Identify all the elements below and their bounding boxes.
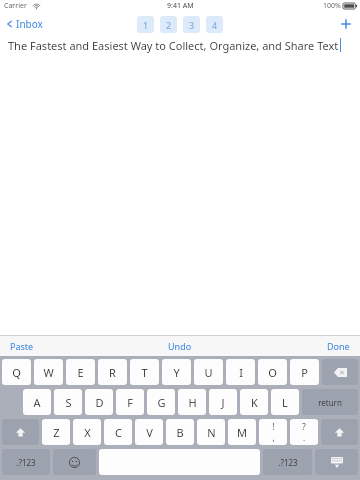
staticText: ? . — [302, 421, 306, 443]
button[interactable]: Paste — [0, 337, 44, 355]
button[interactable]: H — [178, 389, 206, 415]
staticText: S — [65, 395, 72, 410]
button[interactable]: T — [130, 359, 159, 385]
staticText: .?123 — [278, 457, 298, 468]
button[interactable]: K — [240, 389, 268, 415]
staticText: D — [95, 395, 104, 410]
staticText: J — [221, 395, 225, 410]
button[interactable]: 1 — [137, 16, 154, 33]
button[interactable]: Y — [162, 359, 191, 385]
button[interactable]: Z — [42, 419, 70, 445]
button[interactable]: 2 — [160, 16, 177, 33]
button[interactable]: Hide keyboard — [315, 449, 358, 475]
button[interactable]: ! , — [259, 419, 287, 445]
button[interactable]: F — [116, 389, 144, 415]
button[interactable]: Backspace — [322, 359, 358, 385]
button[interactable]: Inbox — [0, 13, 51, 35]
staticText: Q — [12, 365, 21, 380]
staticText: 100% — [323, 1, 341, 11]
staticText: H — [188, 395, 197, 410]
button[interactable]: J — [209, 389, 237, 415]
button[interactable]: X — [73, 419, 101, 445]
button[interactable]: Emoji — [53, 449, 96, 475]
staticText: F — [127, 395, 133, 410]
staticText: Y — [173, 365, 180, 380]
button[interactable]: Q — [2, 359, 31, 385]
button[interactable]: Done — [317, 337, 360, 355]
staticText: W — [43, 365, 54, 380]
button[interactable]: C — [104, 419, 132, 445]
button[interactable]: P — [290, 359, 319, 385]
staticText: Inbox — [16, 17, 43, 31]
staticText: L — [282, 395, 288, 410]
staticText: B — [176, 425, 184, 440]
staticText: 3 — [189, 19, 195, 31]
staticText: U — [204, 365, 213, 380]
button[interactable]: N — [197, 419, 225, 445]
staticText: R — [109, 365, 116, 380]
button[interactable]: ? . — [290, 419, 318, 445]
staticText: Z — [53, 425, 60, 440]
staticText: I — [239, 365, 243, 380]
staticText: K — [251, 395, 258, 410]
staticText: 9:41 AM — [167, 1, 194, 11]
staticText: G — [157, 395, 166, 410]
staticText: ! , — [272, 421, 275, 443]
button[interactable]: V — [135, 419, 163, 445]
staticText: M — [237, 425, 247, 440]
button[interactable]: O — [258, 359, 287, 385]
staticText: T — [141, 365, 148, 380]
button[interactable]: 4 — [206, 16, 223, 33]
button[interactable]: B — [166, 419, 194, 445]
staticText: 4 — [212, 19, 218, 31]
staticText: 2 — [166, 19, 172, 31]
button[interactable]: return — [302, 389, 358, 415]
button[interactable]: Shift — [2, 419, 39, 445]
button[interactable]: Shift — [321, 419, 358, 445]
button[interactable]: Undo — [158, 337, 202, 355]
button[interactable]: 3 — [183, 16, 200, 33]
staticText: Carrier — [4, 1, 27, 11]
staticText: 1 — [143, 19, 149, 31]
button[interactable]: R — [98, 359, 127, 385]
staticText: A — [33, 395, 41, 410]
button[interactable]: W — [34, 359, 63, 385]
button[interactable]: .?123 — [263, 449, 312, 475]
button[interactable]: D — [85, 389, 113, 415]
staticText: E — [77, 365, 84, 380]
button[interactable]: M — [228, 419, 256, 445]
staticText: O — [268, 365, 277, 380]
button[interactable]: U — [194, 359, 223, 385]
staticText: P — [301, 365, 308, 380]
staticText: return — [318, 397, 342, 408]
staticText: N — [207, 425, 216, 440]
button[interactable]: E — [66, 359, 95, 385]
staticText: X — [84, 425, 91, 440]
button[interactable]: .?123 — [2, 449, 50, 475]
button[interactable]: A — [23, 389, 51, 415]
button[interactable]: Add — [332, 14, 360, 34]
staticText: The Fastest and Easiest Way to Collect, … — [8, 38, 339, 53]
button[interactable]: S — [54, 389, 82, 415]
staticText: V — [146, 425, 153, 440]
staticText: C — [115, 425, 122, 440]
button[interactable]: I — [226, 359, 255, 385]
button[interactable]: G — [147, 389, 175, 415]
button[interactable]: L — [271, 389, 299, 415]
staticText: .?123 — [16, 457, 36, 468]
